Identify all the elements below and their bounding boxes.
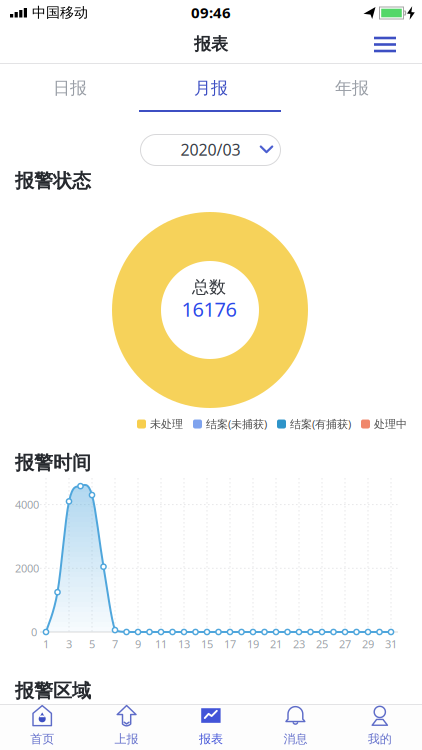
staticText: 报表 (194, 34, 228, 54)
staticText: 年报 (335, 78, 369, 98)
staticText: 2000 (15, 561, 39, 576)
staticText: 报表 (199, 732, 223, 746)
staticText: 总数 (192, 277, 226, 297)
staticText: 29 (362, 637, 374, 651)
staticText: 25 (316, 637, 328, 651)
staticText: 1 (43, 637, 49, 651)
staticText: 月报 (194, 78, 228, 98)
staticText: 2020/03 (180, 139, 240, 160)
staticText: 消息 (283, 732, 307, 746)
staticText: 13 (178, 637, 190, 651)
button[interactable]: 年报 (282, 64, 422, 112)
staticText: 报警时间 (15, 451, 91, 475)
button[interactable] (374, 37, 396, 52)
staticText: 19 (247, 637, 259, 651)
button[interactable]: 我的 (338, 703, 422, 748)
button[interactable]: 月报 (141, 64, 281, 112)
staticText: 11 (155, 637, 167, 651)
staticText: 结案(有捕获) (290, 417, 351, 431)
staticText: 17 (224, 637, 236, 651)
staticText: 未处理 (150, 417, 183, 431)
staticText: 7 (112, 637, 118, 651)
staticText: 9 (135, 637, 141, 651)
staticText: 处理中 (374, 417, 407, 431)
staticText: 报警区域 (15, 679, 91, 703)
staticText: 中国移动 (32, 4, 88, 21)
staticText: 27 (339, 637, 351, 651)
staticText: 上报 (115, 732, 139, 746)
staticText: 0 (31, 625, 37, 639)
button[interactable]: 消息 (253, 703, 338, 748)
staticText: 报警状态 (15, 169, 91, 193)
staticText: 16176 (181, 296, 236, 322)
staticText: 23 (293, 637, 305, 651)
button[interactable]: 报表 (169, 703, 253, 748)
button[interactable]: 2020/03 (140, 134, 281, 166)
button[interactable]: 首页 (0, 703, 84, 748)
staticText: 09:46 (191, 2, 231, 22)
staticText: 日报 (53, 78, 87, 98)
staticText: 4000 (15, 497, 39, 512)
staticText: 3 (66, 637, 72, 651)
staticText: 5 (89, 637, 95, 651)
staticText: 首页 (30, 732, 54, 746)
staticText: 21 (270, 637, 282, 651)
staticText: 15 (201, 637, 213, 651)
button[interactable]: 日报 (0, 64, 140, 112)
button[interactable]: 上报 (84, 703, 169, 748)
staticText: 31 (385, 637, 397, 651)
staticText: 结案(未捕获) (206, 417, 267, 431)
staticText: 我的 (368, 732, 392, 746)
